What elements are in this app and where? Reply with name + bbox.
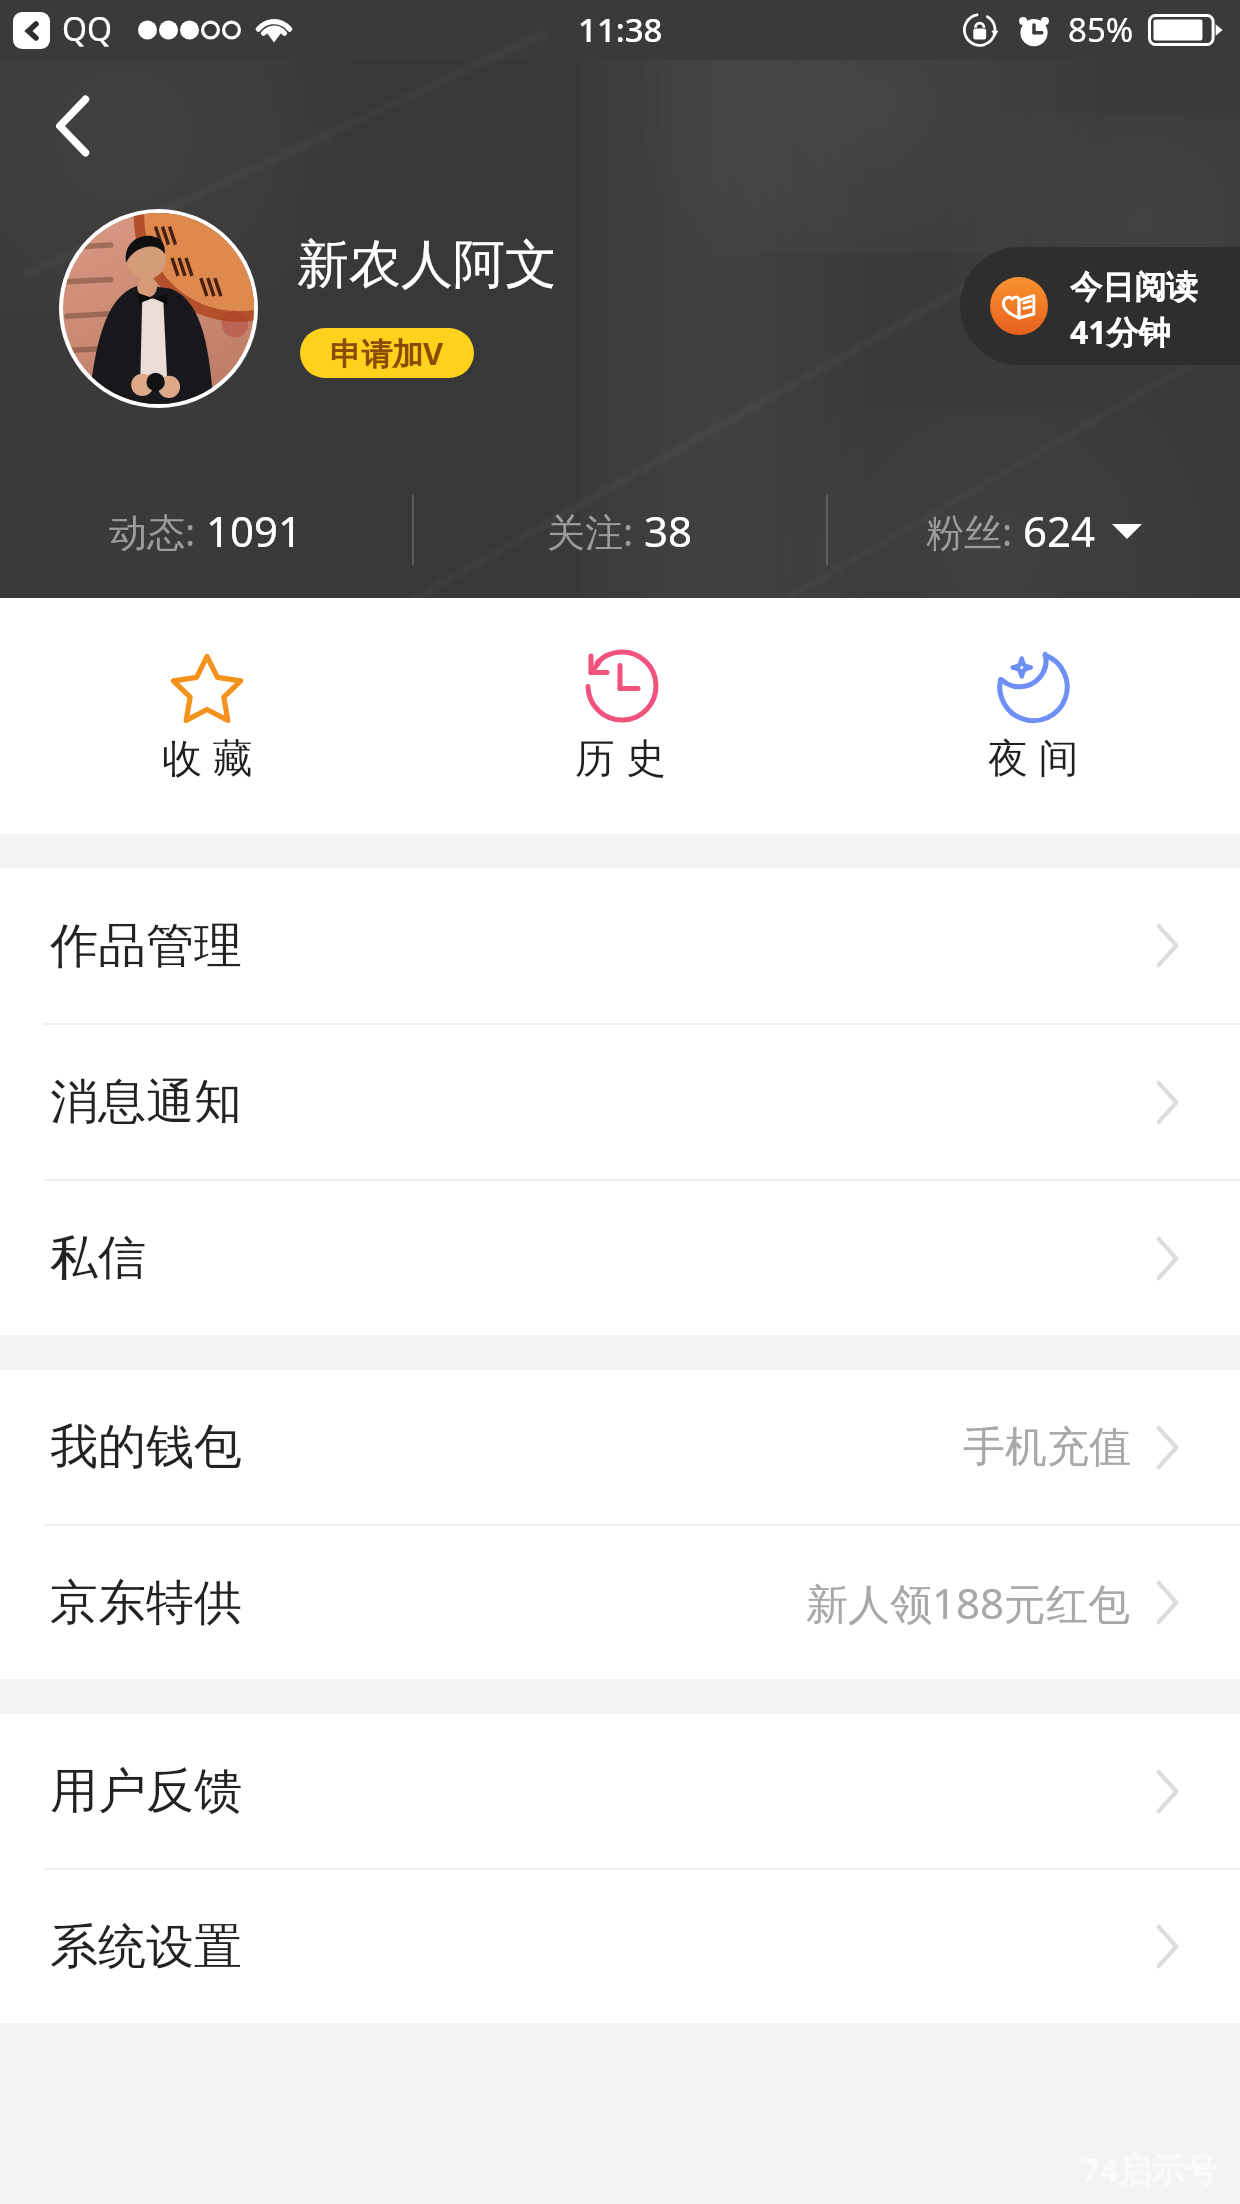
staticText: 85% — [1068, 7, 1134, 52]
button[interactable]: 今日阅读 — [960, 247, 1240, 365]
staticText: 624 — [1023, 502, 1096, 559]
staticText: 系统设置 — [50, 1917, 242, 1977]
staticText: 夜 间 — [988, 729, 1079, 784]
staticText: 手机充值 — [963, 1421, 1131, 1474]
staticText: 11:38 — [578, 7, 663, 52]
staticText: 新农人阿文 — [297, 232, 557, 298]
button[interactable]: 用户反馈 — [0, 1714, 1240, 1868]
staticText: 动态: — [109, 505, 206, 557]
button[interactable]: Profile photo — [63, 213, 254, 404]
staticText: QQ — [62, 7, 112, 51]
button[interactable]: 私信 — [0, 1181, 1240, 1335]
staticText: 历 史 — [575, 729, 666, 784]
staticText: 41分钟 — [1070, 310, 1171, 354]
button[interactable]: 消息通知 — [0, 1025, 1240, 1179]
staticText: 申请加V — [330, 332, 444, 374]
button[interactable]: 关注: — [414, 502, 826, 559]
button[interactable]: 动态: — [0, 502, 412, 559]
staticText: 消息通知 — [50, 1072, 242, 1132]
button[interactable]: Back — [30, 84, 114, 168]
button[interactable]: 系统设置 — [0, 1870, 1240, 2023]
staticText: 38 — [644, 502, 693, 559]
button[interactable]: 粉丝: — [828, 502, 1240, 559]
staticText: 1091 — [206, 502, 303, 559]
staticText: 私信 — [50, 1228, 146, 1288]
button[interactable]: 京东特供 — [0, 1526, 1240, 1679]
staticText: 今日阅读 — [1070, 267, 1198, 307]
button[interactable]: 历 史 — [414, 598, 827, 834]
button[interactable]: 夜 间 — [827, 598, 1240, 834]
staticText: 收 藏 — [162, 729, 253, 784]
staticText: 作品管理 — [50, 916, 242, 976]
button[interactable]: Return to QQ — [13, 12, 50, 49]
button[interactable]: 作品管理 — [0, 868, 1240, 1023]
staticText: 京东特供 — [50, 1573, 242, 1633]
button[interactable]: 我的钱包 — [0, 1370, 1240, 1524]
button[interactable]: 收 藏 — [0, 598, 414, 834]
button[interactable]: 申请加V — [300, 328, 474, 378]
staticText: 新人领188元红包 — [806, 1574, 1131, 1631]
staticText: 我的钱包 — [50, 1417, 242, 1477]
staticText: 关注: — [547, 505, 644, 557]
staticText: 用户反馈 — [50, 1761, 242, 1821]
staticText: 粉丝: — [926, 505, 1023, 557]
